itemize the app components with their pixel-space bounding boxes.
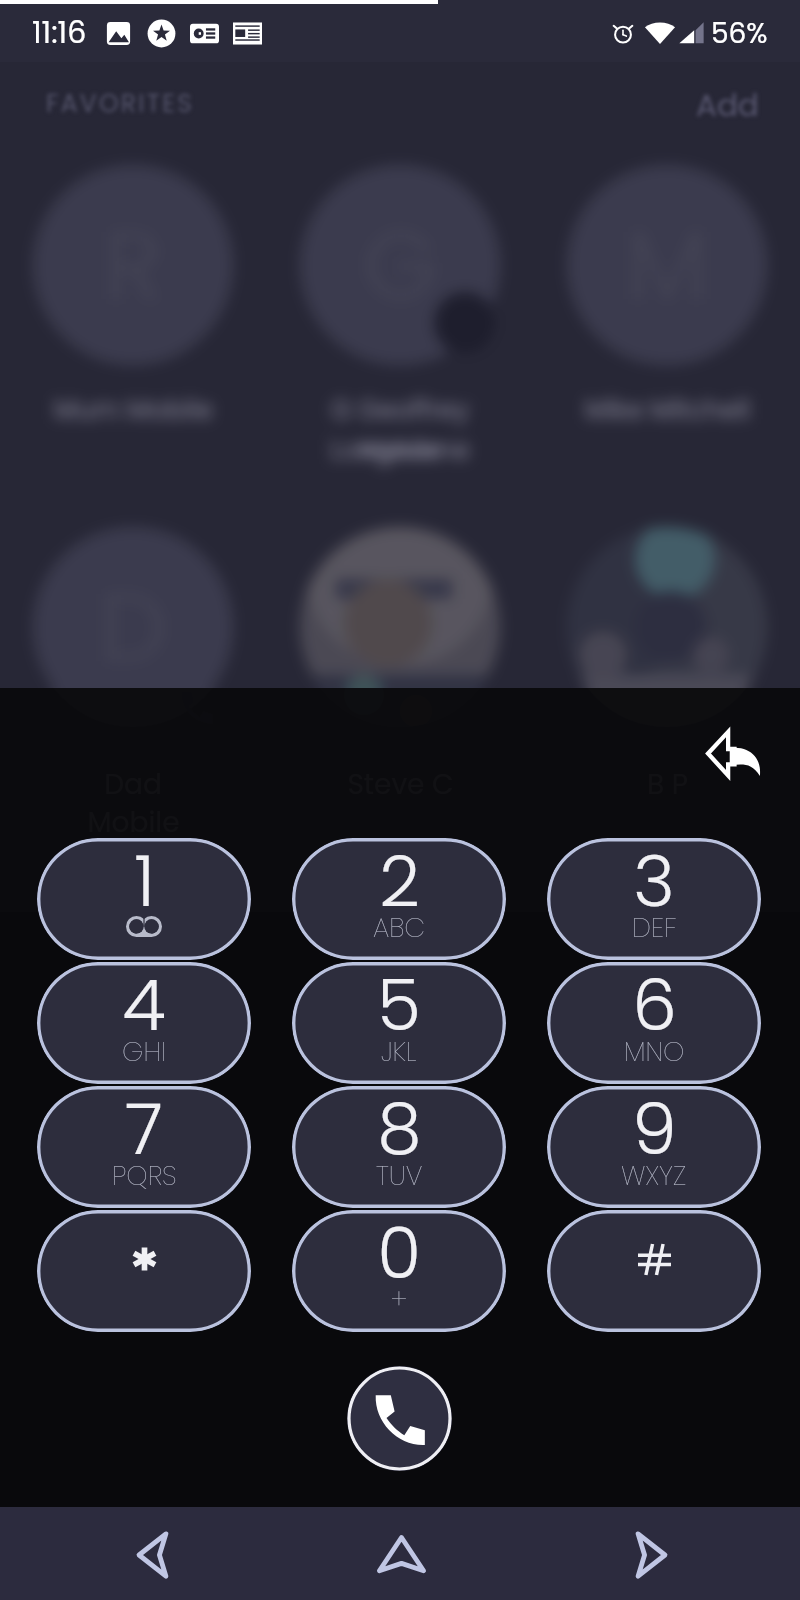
staticText: Add — [696, 83, 759, 126]
button[interactable]: 3 — [547, 838, 761, 960]
staticText: MNO — [624, 1033, 685, 1071]
staticText: + — [391, 1281, 407, 1319]
staticText: Mobile — [87, 803, 180, 842]
staticText: WXYZ — [621, 1157, 687, 1195]
staticText: 0 — [377, 1210, 421, 1302]
staticText: G Geoffrey Longname — [267, 392, 533, 468]
staticText: FAVORITES — [46, 86, 195, 121]
button[interactable]: 5 — [292, 962, 506, 1084]
staticText: 7 — [125, 1086, 163, 1178]
staticText: TUV — [376, 1157, 423, 1195]
button[interactable]: 8 — [292, 1086, 506, 1208]
staticText: 9 — [632, 1086, 677, 1178]
staticText: 11:16 — [32, 12, 87, 54]
button[interactable] — [37, 1210, 251, 1332]
button[interactable] — [547, 1210, 761, 1332]
button[interactable]: 7 — [37, 1086, 251, 1208]
staticText: DEF — [632, 909, 677, 947]
staticText: 5 — [377, 962, 421, 1054]
staticText: PQRS — [112, 1157, 177, 1195]
button[interactable]: 0 — [292, 1210, 506, 1332]
button[interactable]: Call — [347, 1366, 452, 1471]
button[interactable]: 4 — [37, 962, 251, 1084]
staticText: 6 — [632, 962, 677, 1054]
staticText: Mum Mobile — [54, 392, 213, 428]
staticText: 56% — [711, 14, 768, 53]
button[interactable]: 6 — [547, 962, 761, 1084]
button[interactable]: Backspace — [694, 713, 774, 793]
staticText: 1 — [134, 838, 155, 930]
staticText: 4 — [122, 962, 166, 1054]
staticText: ABC — [373, 909, 426, 947]
staticText: 8 — [377, 1086, 422, 1178]
button[interactable]: 2 — [292, 838, 506, 960]
staticText: GHI — [122, 1033, 167, 1071]
staticText: Mobile — [361, 434, 440, 468]
button[interactable]: Back — [67, 1507, 241, 1600]
staticText: Mike Mitchell — [585, 392, 750, 428]
staticText: JKL — [381, 1033, 417, 1071]
staticText: 2 — [379, 838, 420, 930]
button[interactable]: 1 — [37, 838, 251, 960]
staticText: 3 — [633, 838, 675, 930]
button[interactable]: 9 — [547, 1086, 761, 1208]
button[interactable]: Home — [314, 1507, 488, 1600]
button[interactable]: Recents — [563, 1507, 737, 1600]
